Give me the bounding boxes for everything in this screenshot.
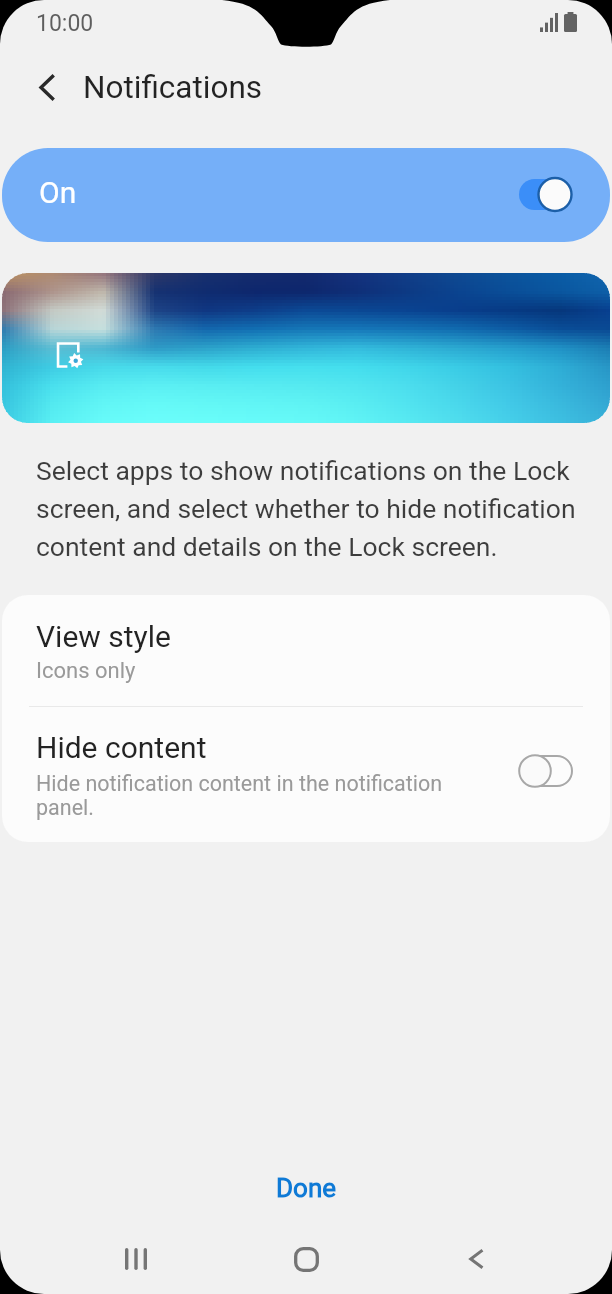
button[interactable]: Hide content bbox=[2, 707, 610, 842]
button[interactable]: View style bbox=[2, 595, 610, 706]
button[interactable]: Recents bbox=[51, 1228, 221, 1290]
button[interactable]: On bbox=[2, 148, 610, 242]
staticText: View style bbox=[36, 619, 171, 654]
staticText: Hide notification content in the notific… bbox=[36, 771, 461, 821]
button[interactable]: Hide content toggle bbox=[497, 745, 581, 797]
staticText: On bbox=[39, 175, 77, 210]
button[interactable]: Back bbox=[18, 64, 64, 110]
staticText: Hide content bbox=[36, 730, 207, 765]
button[interactable]: Home bbox=[221, 1228, 391, 1290]
staticText: Done bbox=[276, 1173, 337, 1203]
staticText: 10:00 bbox=[36, 10, 94, 37]
button[interactable] bbox=[2, 273, 610, 423]
button[interactable]: Done bbox=[0, 1163, 612, 1213]
staticText: Notifications bbox=[83, 69, 263, 106]
button[interactable]: Back bbox=[391, 1228, 561, 1290]
staticText: Select apps to show notifications on the… bbox=[36, 455, 596, 563]
staticText: Icons only bbox=[36, 658, 136, 684]
